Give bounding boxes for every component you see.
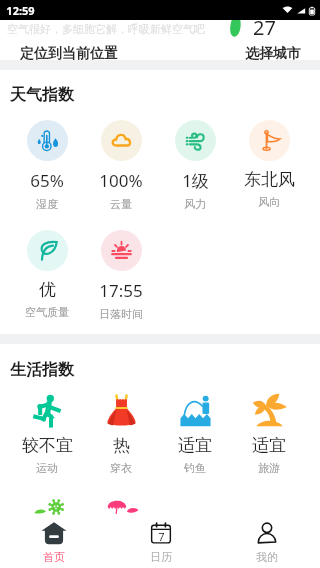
button[interactable]: 100% bbox=[84, 120, 158, 211]
staticText: 热 bbox=[113, 435, 130, 456]
staticText: 空气很好，多细胞它解，呼吸新鲜空气吧 bbox=[7, 22, 205, 36]
staticText: 65% bbox=[30, 169, 64, 192]
staticText: 运动 bbox=[36, 461, 58, 475]
staticText: 云量 bbox=[110, 197, 132, 211]
staticText: 穿衣 bbox=[110, 461, 132, 475]
staticText: 较不宜 bbox=[22, 435, 73, 456]
staticText: 首页 bbox=[43, 550, 65, 564]
button[interactable]: 较不宜 bbox=[10, 393, 84, 475]
staticText: 日落时间 bbox=[99, 307, 143, 321]
button[interactable]: 定位到当前位置 bbox=[0, 43, 126, 65]
button[interactable]: 日历 bbox=[107, 520, 214, 564]
staticText: 定位到当前位置 bbox=[20, 45, 118, 63]
staticText: 适宜 bbox=[252, 435, 286, 456]
staticText: 钓鱼 bbox=[184, 461, 206, 475]
staticText: 优 bbox=[39, 279, 56, 300]
staticText: 17:55 bbox=[99, 279, 143, 302]
staticText: 日历 bbox=[150, 550, 172, 564]
staticText: 风力 bbox=[184, 197, 206, 211]
staticText: 12:59 bbox=[6, 3, 35, 18]
staticText: 风向 bbox=[258, 195, 280, 209]
button[interactable]: 选择城市 bbox=[237, 43, 315, 65]
staticText: 东北风 bbox=[244, 169, 295, 190]
staticText: 我的 bbox=[256, 550, 278, 564]
staticText: 100% bbox=[99, 169, 143, 192]
button[interactable]: 我的 bbox=[213, 520, 320, 564]
staticText: 空气质量 bbox=[25, 305, 69, 319]
button[interactable]: 热 bbox=[84, 393, 158, 475]
staticText: 生活指数 bbox=[10, 360, 74, 380]
staticText: 适宜 bbox=[178, 435, 212, 456]
button[interactable]: 适宜 bbox=[232, 393, 306, 475]
button[interactable]: 1级 bbox=[158, 120, 232, 211]
staticText: 7 bbox=[158, 529, 165, 544]
button[interactable]: 适宜 bbox=[158, 393, 232, 475]
button[interactable]: 东北风 bbox=[232, 120, 306, 209]
staticText: 湿度 bbox=[36, 197, 58, 211]
button[interactable]: 65% bbox=[10, 120, 84, 211]
staticText: 选择城市 bbox=[245, 45, 301, 63]
button[interactable]: 首页 bbox=[0, 520, 107, 564]
staticText: 27 bbox=[253, 14, 276, 41]
staticText: 1级 bbox=[182, 169, 209, 192]
staticText: 天气指数 bbox=[10, 85, 74, 105]
staticText: 旅游 bbox=[258, 461, 280, 475]
button[interactable]: 17:55 bbox=[84, 230, 158, 321]
button[interactable]: 优 bbox=[10, 230, 84, 319]
